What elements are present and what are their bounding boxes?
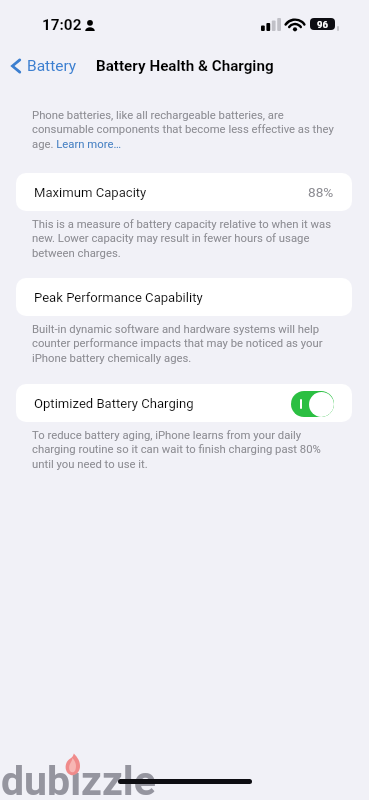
staticText: Maximum Capacity (34, 185, 147, 200)
staticText: counter performance impacts that may be … (32, 337, 323, 350)
staticText: consumable components that become less e… (32, 123, 334, 136)
button[interactable]: Optimized Battery Charging, on (291, 391, 334, 417)
staticText: until you need to use it. (32, 458, 148, 471)
staticText: Battery (27, 57, 77, 75)
staticText: This is a measure of battery capacity re… (32, 218, 331, 231)
staticText: 17:02 (42, 16, 82, 34)
button[interactable]: Battery (8, 55, 80, 77)
staticText: 88% (308, 184, 334, 200)
staticText: iPhone battery chemically ages. (32, 352, 192, 365)
staticText: Phone batteries, like all rechargeable b… (32, 109, 284, 122)
staticText: To reduce battery aging, iPhone learns f… (32, 429, 302, 442)
button[interactable]: Maximum Capacity (16, 173, 352, 211)
staticText: between charges. (32, 247, 121, 260)
staticText: Peak Performance Capability (34, 290, 203, 305)
staticText: Built-in dynamic software and hardware s… (32, 323, 320, 336)
staticText: age. Learn more… (32, 138, 121, 151)
staticText: Battery Health & Charging (96, 57, 274, 75)
staticText: dubizzle (1, 757, 156, 800)
staticText: 96 (317, 19, 329, 30)
staticText: new. Lower capacity may result in fewer … (32, 232, 310, 245)
staticText: charging routine so it can wait to finis… (32, 443, 321, 456)
button[interactable]: Peak Performance Capability (16, 278, 352, 316)
staticText: Optimized Battery Charging (34, 396, 194, 411)
